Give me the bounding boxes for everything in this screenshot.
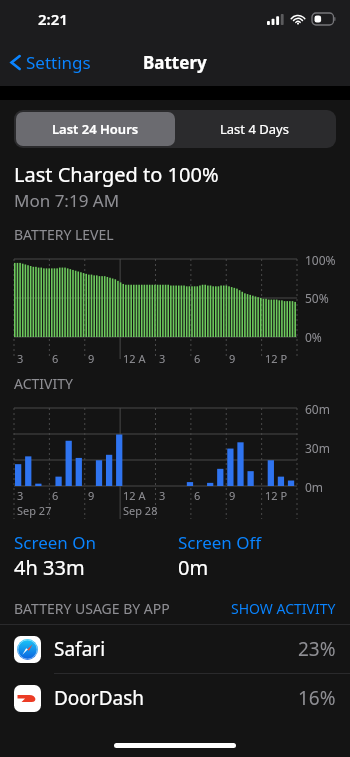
button[interactable]: Last 4 Days [175, 112, 334, 146]
staticText: Screen Off [178, 531, 262, 554]
staticText: 3 [17, 351, 24, 366]
staticText: 6 [52, 351, 59, 366]
staticText: Settings [26, 51, 91, 74]
staticText: BATTERY USAGE BY APP [14, 599, 170, 618]
button[interactable]: SHOW ACTIVITY [231, 599, 336, 618]
staticText: 0m [305, 479, 324, 495]
other: Back to Settings [10, 53, 21, 72]
staticText: 23% [298, 636, 336, 662]
staticText: 4h 33m [14, 554, 85, 581]
staticText: 6 [52, 488, 59, 503]
staticText: 100% [305, 252, 336, 268]
staticText: Last Charged to 100% [14, 161, 219, 188]
staticText: 12 A [123, 351, 146, 366]
staticText: Last 4 Days [220, 120, 289, 138]
button[interactable]: Back to Settings [6, 46, 95, 79]
staticText: 12 P [265, 351, 288, 366]
staticText: 2:21 [38, 9, 68, 29]
staticText: 12 A [123, 488, 146, 503]
staticText: Last 24 Hours [52, 120, 139, 138]
staticText: 9 [88, 351, 95, 366]
staticText: 6 [194, 488, 201, 503]
staticText: Battery [143, 51, 207, 74]
staticText: Sep 27 [17, 503, 52, 518]
button[interactable]: DoorDash [0, 674, 350, 722]
staticText: 3 [159, 351, 166, 366]
staticText: Sep 28 [123, 503, 158, 518]
staticText: 16% [298, 685, 336, 711]
staticText: 3 [17, 488, 24, 503]
staticText: Safari [54, 636, 106, 662]
button[interactable]: Last 24 Hours [16, 112, 175, 146]
staticText: 9 [229, 351, 236, 366]
staticText: 6 [194, 351, 201, 366]
staticText: 30m [305, 440, 330, 456]
staticText: Mon 7:19 AM [14, 189, 120, 212]
staticText: 50% [305, 290, 329, 306]
staticText: 9 [229, 488, 236, 503]
button[interactable]: Safari [0, 625, 350, 673]
staticText: Screen On [14, 531, 97, 554]
staticText: SHOW ACTIVITY [231, 599, 336, 618]
staticText: ACTIVITY [14, 374, 73, 393]
staticText: DoorDash [54, 685, 145, 711]
staticText: 9 [88, 488, 95, 503]
staticText: 3 [159, 488, 166, 503]
staticText: BATTERY LEVEL [14, 225, 114, 244]
staticText: 0% [305, 329, 322, 345]
staticText: 0m [178, 554, 209, 581]
staticText: 60m [305, 401, 330, 417]
staticText: 12 P [265, 488, 288, 503]
